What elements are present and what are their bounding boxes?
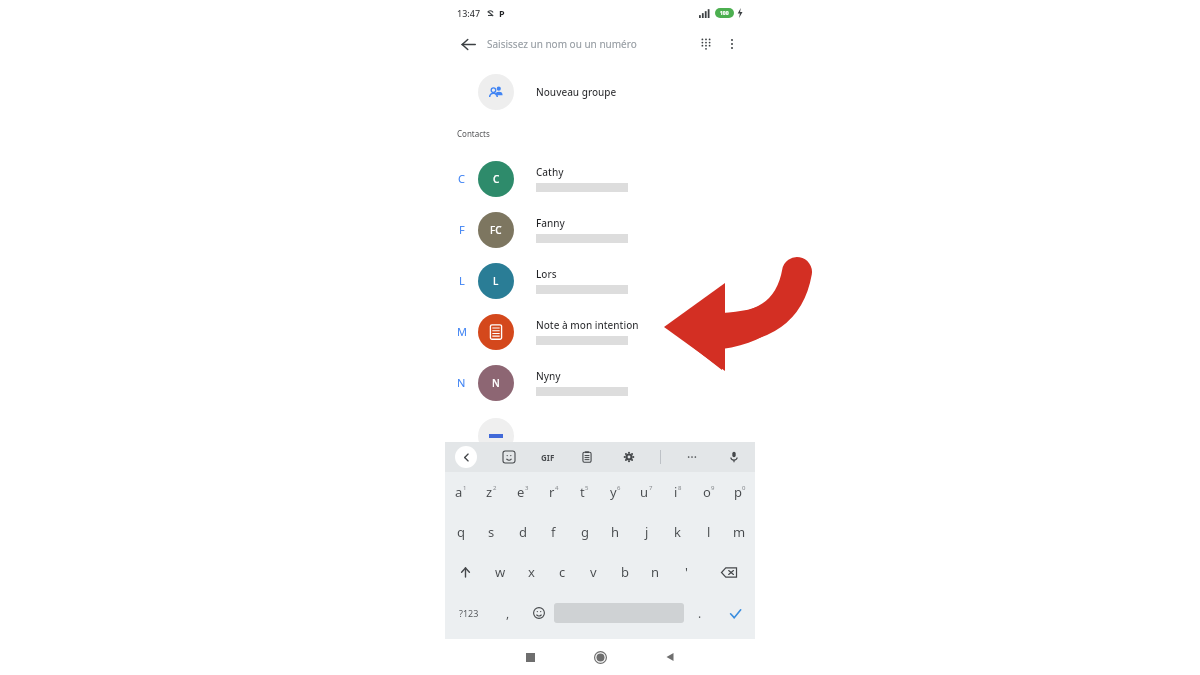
staticText: y (610, 483, 617, 501)
button[interactable]: o (693, 472, 724, 512)
button[interactable]: Nouveau groupe (445, 70, 755, 114)
button[interactable]: r (538, 472, 569, 512)
staticText: f (551, 523, 556, 541)
staticText: 1 (463, 484, 467, 492)
staticText: , (506, 605, 510, 621)
button[interactable]: y (600, 472, 631, 512)
button[interactable]: w (485, 552, 516, 592)
button[interactable]: i (662, 472, 693, 512)
staticText: M (457, 324, 467, 339)
staticText: e (517, 483, 525, 501)
staticText: 0 (742, 484, 746, 492)
button[interactable]: Recents (495, 639, 565, 675)
staticText: p (734, 483, 742, 501)
button[interactable]: l (693, 512, 724, 552)
staticText: Nouveau groupe (536, 85, 617, 99)
button[interactable]: Back (635, 639, 705, 675)
staticText: z (486, 483, 493, 501)
button[interactable]: Enter (715, 592, 755, 634)
staticText: h (611, 523, 620, 541)
staticText: Fanny (536, 216, 565, 230)
staticText: Contacts (457, 128, 490, 139)
staticText: q (457, 523, 465, 541)
staticText: v (590, 563, 597, 581)
button[interactable]: ' (671, 552, 702, 592)
staticText: N (492, 376, 500, 390)
button[interactable]: Voice input (723, 446, 745, 468)
staticText: s (488, 523, 495, 541)
staticText: 13:47 (457, 7, 481, 19)
button[interactable]: Dialpad (693, 31, 719, 57)
staticText: 100 (720, 10, 729, 17)
button[interactable]: F (445, 204, 755, 255)
staticText: L (459, 273, 465, 288)
staticText: N (457, 375, 466, 390)
button[interactable]: q (445, 512, 476, 552)
button[interactable]: u (631, 472, 662, 512)
staticText: 6 (617, 484, 621, 492)
button[interactable]: h (600, 512, 631, 552)
button[interactable]: k (662, 512, 693, 552)
button[interactable]: Stickers (498, 446, 520, 468)
staticText: 8 (678, 484, 682, 492)
staticText: t (580, 483, 585, 501)
staticText: w (495, 563, 506, 581)
staticText: c (559, 563, 566, 581)
button[interactable]: More (681, 446, 703, 468)
staticText: ?123 (459, 607, 479, 619)
button[interactable]: GIF (541, 452, 555, 463)
button[interactable]: Shift (445, 552, 485, 592)
staticText: Cathy (536, 165, 564, 179)
button[interactable]: f (538, 512, 569, 552)
button[interactable]: Settings (618, 446, 640, 468)
staticText: o (703, 483, 711, 501)
staticText: n (651, 563, 660, 581)
button[interactable]: . (684, 592, 715, 634)
staticText: l (707, 523, 711, 541)
button[interactable]: s (476, 512, 507, 552)
staticText: 4 (555, 484, 559, 492)
button[interactable]: c (547, 552, 578, 592)
staticText: Lors (536, 267, 557, 281)
button[interactable]: Backspace (702, 552, 755, 592)
staticText: Saisissez un nom ou un numéro (487, 37, 693, 51)
button[interactable]: N (445, 357, 755, 408)
button[interactable]: g (569, 512, 600, 552)
staticText: 7 (649, 484, 653, 492)
button[interactable]: M (445, 306, 755, 357)
staticText: ' (685, 563, 688, 581)
staticText: F (459, 222, 465, 237)
button[interactable]: a (445, 472, 476, 512)
button[interactable]: x (516, 552, 547, 592)
button[interactable]: Back (455, 31, 481, 57)
button[interactable]: , (492, 592, 523, 634)
staticText: 2 (493, 484, 497, 492)
button[interactable]: More options (719, 31, 745, 57)
staticText: d (519, 523, 527, 541)
staticText: L (493, 274, 499, 288)
staticText: Nyny (536, 369, 561, 383)
button[interactable]: Clipboard (576, 446, 598, 468)
button[interactable]: n (640, 552, 671, 592)
button[interactable]: Emoji (523, 592, 554, 634)
button[interactable]: L (445, 255, 755, 306)
staticText: i (674, 483, 678, 501)
button[interactable]: j (631, 512, 662, 552)
button[interactable]: t (569, 472, 600, 512)
button[interactable]: d (507, 512, 538, 552)
staticText: a (455, 483, 463, 501)
staticText: P (499, 7, 505, 19)
button[interactable]: p (724, 472, 755, 512)
button[interactable]: z (476, 472, 507, 512)
staticText: k (674, 523, 681, 541)
staticText: Note à mon intention (536, 318, 639, 332)
button[interactable]: v (578, 552, 609, 592)
button[interactable]: Home (565, 639, 635, 675)
button[interactable]: b (609, 552, 640, 592)
button[interactable]: C (445, 153, 755, 204)
button[interactable]: ?123 (445, 592, 492, 634)
button[interactable]: m (724, 512, 755, 552)
button[interactable]: e (507, 472, 538, 512)
button[interactable]: Expand toolbar (455, 446, 477, 468)
